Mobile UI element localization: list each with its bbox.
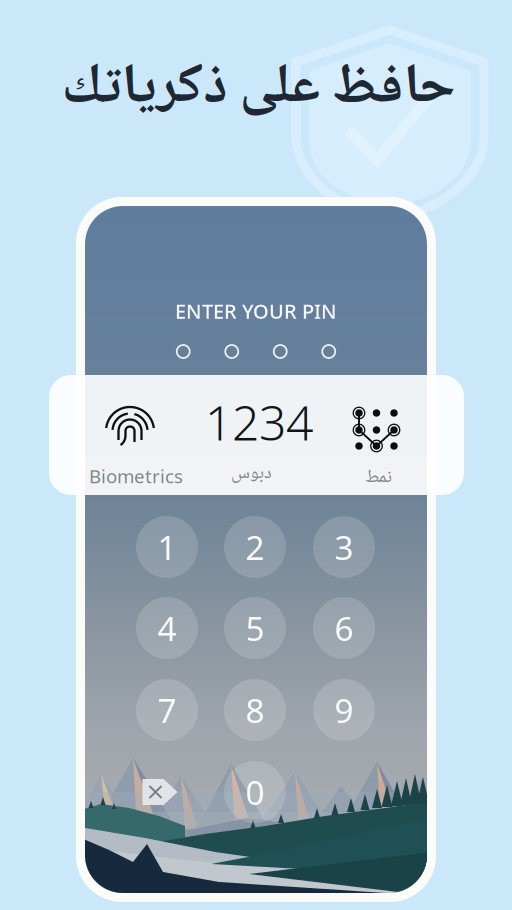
staticText: ENTER YOUR PIN xyxy=(175,298,337,324)
staticText: 1 xyxy=(157,525,176,569)
staticText: Biometrics xyxy=(89,464,183,488)
staticText: 6 xyxy=(334,606,353,650)
button[interactable]: 1234 xyxy=(189,377,321,493)
staticText: دبوس xyxy=(230,458,271,490)
button[interactable]: 4 xyxy=(136,597,198,659)
button[interactable]: 5 xyxy=(224,597,286,659)
staticText: 5 xyxy=(245,606,264,650)
staticText: نمط xyxy=(364,462,391,494)
button[interactable]: 6 xyxy=(313,597,375,659)
staticText: حافظ على ذكرياتك xyxy=(61,43,455,137)
button[interactable]: 8 xyxy=(224,679,286,741)
button[interactable]: 1 xyxy=(136,516,198,578)
button[interactable]: 0 xyxy=(224,761,286,823)
staticText: 8 xyxy=(245,688,264,732)
button[interactable]: 9 xyxy=(313,679,375,741)
button[interactable]: Biometrics xyxy=(64,377,196,493)
button[interactable]: Delete xyxy=(141,777,178,807)
staticText: 0 xyxy=(245,770,264,814)
staticText: 4 xyxy=(157,606,176,650)
staticText: 7 xyxy=(157,688,176,732)
button[interactable]: 7 xyxy=(136,679,198,741)
staticText: 3 xyxy=(334,525,353,569)
button[interactable]: 2 xyxy=(224,516,286,578)
button[interactable]: نمط xyxy=(312,377,444,493)
staticText: 1234 xyxy=(205,390,313,454)
staticText: 2 xyxy=(245,525,264,569)
button[interactable]: 3 xyxy=(313,516,375,578)
staticText: 9 xyxy=(334,688,353,732)
